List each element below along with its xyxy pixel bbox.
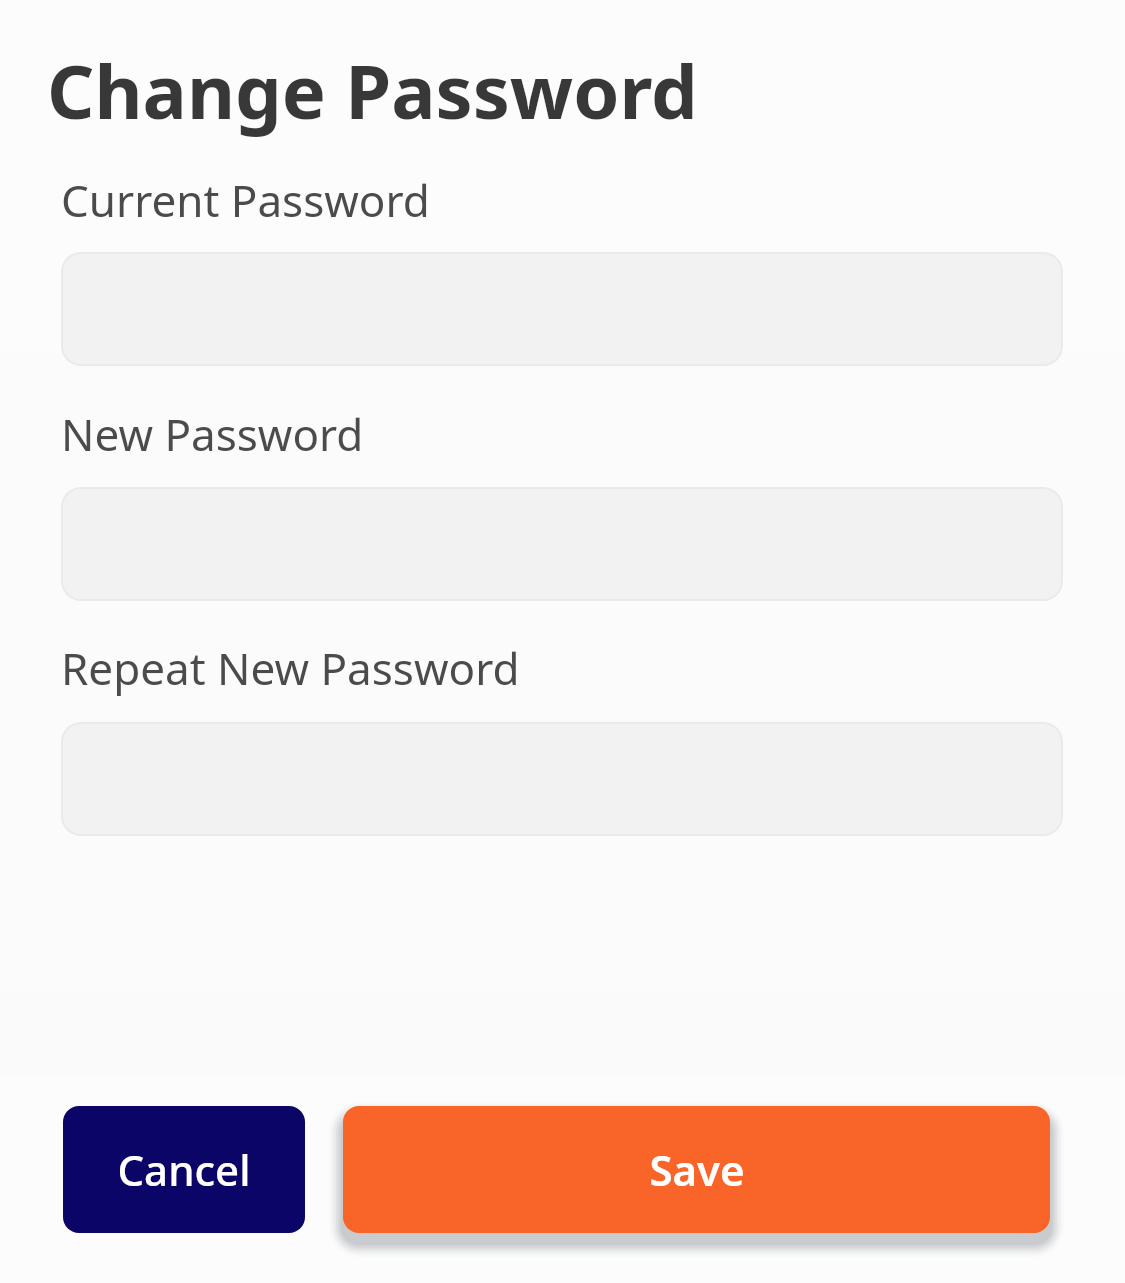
button[interactable]: Cancel	[63, 1106, 305, 1233]
staticText: New Password	[61, 404, 364, 464]
staticText: Change Password	[47, 40, 698, 141]
staticText: Cancel	[117, 1141, 251, 1198]
staticText: Save	[649, 1141, 745, 1198]
staticText: Repeat New Password	[61, 638, 520, 698]
staticText: Current Password	[61, 170, 430, 230]
button[interactable]: Save	[343, 1106, 1050, 1233]
